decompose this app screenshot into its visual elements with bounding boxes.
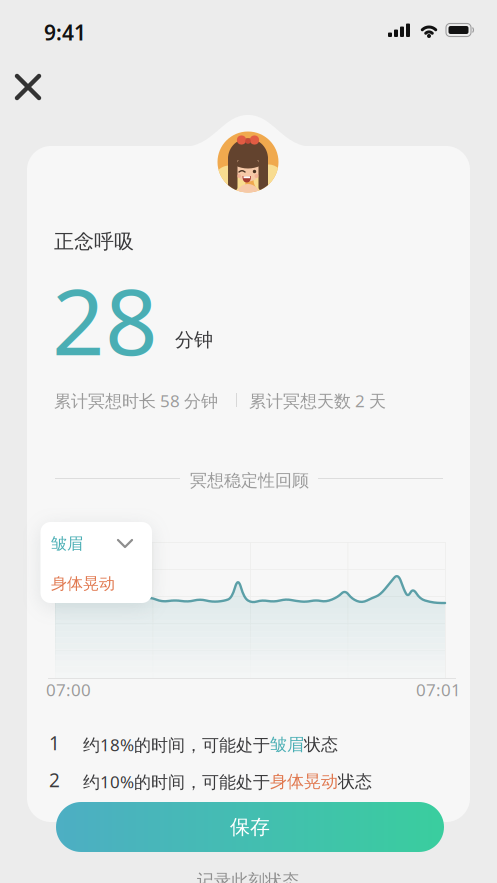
staticText: 2 bbox=[49, 767, 60, 793]
staticText: 记录此刻状态 bbox=[197, 870, 299, 883]
staticText: 07:00 bbox=[46, 678, 91, 701]
staticText: 身体晃动 bbox=[51, 573, 115, 594]
staticText: 累计冥想时长 58 分钟 bbox=[54, 389, 218, 412]
staticText: 分钟 bbox=[175, 328, 213, 352]
staticText: 累计冥想天数 2 天 bbox=[249, 389, 386, 412]
button[interactable]: 记录此刻状态 bbox=[197, 870, 299, 883]
staticText: 正念呼吸 bbox=[54, 229, 134, 254]
staticText: 皱眉 bbox=[51, 533, 83, 554]
staticText: 身体晃动 bbox=[270, 771, 338, 792]
staticText: 冥想稳定性回顾 bbox=[190, 470, 309, 491]
staticText: 约18%的时间，可能处于 bbox=[83, 733, 270, 756]
staticText: 1 bbox=[49, 730, 60, 756]
button[interactable]: Close bbox=[6, 65, 50, 109]
staticText: 28 bbox=[52, 257, 158, 382]
button[interactable]: 保存 bbox=[56, 802, 444, 852]
staticText: 9:41 bbox=[44, 18, 86, 47]
staticText: 07:01 bbox=[416, 678, 461, 701]
staticText: 保存 bbox=[230, 814, 270, 840]
staticText: 皱眉 bbox=[270, 734, 304, 755]
button[interactable]: 皱眉 bbox=[40, 522, 152, 603]
staticText: 状态 bbox=[338, 771, 372, 792]
staticText: 状态 bbox=[304, 734, 338, 755]
staticText: 约10%的时间，可能处于 bbox=[83, 770, 270, 793]
